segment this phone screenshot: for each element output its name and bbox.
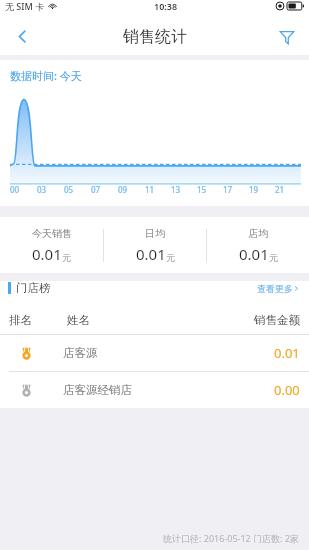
staticText: 查看更多 (257, 283, 293, 294)
staticText: 21 (275, 184, 285, 195)
staticText: 门店榜 (16, 281, 51, 295)
staticText: 03 (37, 184, 47, 195)
staticText: 13 (171, 184, 181, 195)
staticText: 15 (197, 184, 207, 195)
button[interactable]: 查看更多 (257, 283, 300, 294)
staticText: 日均 (145, 227, 165, 240)
staticText: 元 (62, 252, 71, 263)
button[interactable]: 今天销售 (0, 227, 103, 264)
button[interactable]: Back (0, 18, 44, 55)
staticText: 07 (91, 184, 101, 195)
staticText: 11 (145, 184, 155, 195)
staticText: 0.00 (274, 381, 300, 399)
button[interactable]: 店客源经销店 (0, 372, 309, 408)
staticText: 09 (118, 184, 128, 195)
button[interactable]: 日均 (104, 227, 206, 264)
staticText: 05 (64, 184, 74, 195)
button[interactable]: 店均 (207, 227, 309, 264)
staticText: 元 (166, 252, 175, 263)
staticText: 统计口径: 2016-05-12 门店数: 2家 (163, 532, 299, 544)
staticText: 销售金额 (254, 313, 300, 327)
staticText: 元 (269, 252, 278, 263)
staticText: 0.01 (32, 244, 62, 264)
staticText: 排名 (9, 313, 32, 327)
staticText: 姓名 (67, 313, 90, 327)
staticText: 0.01 (136, 244, 166, 264)
button[interactable]: 店客源 (0, 335, 309, 371)
staticText: 店客源经销店 (63, 383, 132, 397)
staticText: 数据时间: 今天 (10, 68, 82, 83)
staticText: 17 (223, 184, 233, 195)
staticText: 0.01 (274, 344, 300, 362)
staticText: 店均 (248, 227, 268, 240)
staticText: 店客源 (63, 346, 98, 360)
staticText: 19 (249, 184, 259, 195)
staticText: 今天销售 (32, 227, 72, 240)
button[interactable]: Filter (265, 18, 309, 55)
staticText: 10:38 (154, 0, 178, 12)
staticText: 0.01 (239, 244, 269, 264)
staticText: 销售统计 (123, 27, 187, 47)
staticText: 无 SIM 卡 (5, 0, 45, 12)
staticText: 00 (10, 184, 20, 195)
